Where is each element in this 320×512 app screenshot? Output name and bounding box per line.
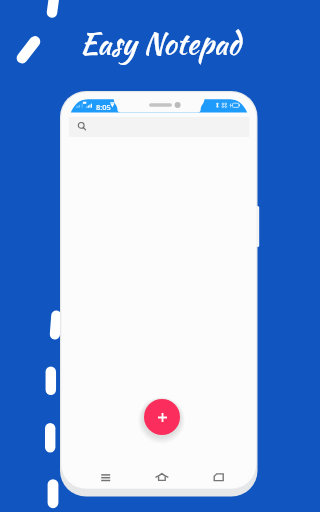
button[interactable]: Recent apps — [92, 469, 120, 487]
button[interactable]: Home — [148, 469, 176, 487]
staticText: Easy Notepad — [0, 21, 320, 65]
button[interactable]: Back — [205, 469, 233, 487]
button[interactable]: Add note — [144, 399, 180, 435]
staticText: 8:05 — [96, 102, 111, 112]
button[interactable]: Search notes — [69, 117, 250, 137]
